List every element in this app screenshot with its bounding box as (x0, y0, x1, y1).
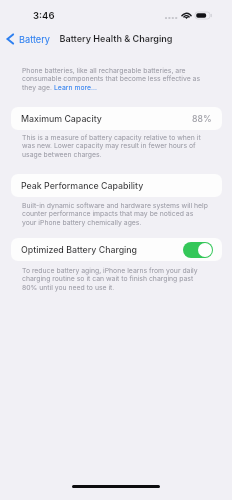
other: Wi-Fi (181, 12, 192, 19)
other: Back (5, 33, 15, 45)
button[interactable]: Maximum Capacity (11, 107, 222, 130)
button[interactable]: Peak Performance Capability (11, 174, 222, 197)
staticText: Battery Health & Charging (0, 33, 232, 44)
staticText: 88% (192, 113, 212, 124)
staticText: Learn more... (54, 83, 97, 91)
staticText: Optimized Battery Charging (21, 244, 138, 255)
staticText: This is a measure of battery capacity re… (22, 133, 222, 159)
staticText: Battery (19, 34, 50, 45)
staticText: To reduce battery aging, iPhone learns f… (22, 266, 222, 292)
button[interactable]: Optimized Battery Charging (11, 238, 222, 261)
other: Battery (195, 12, 212, 19)
button[interactable]: Learn more... (54, 83, 97, 91)
staticText: Phone batteries, like all rechargeable b… (22, 66, 222, 92)
staticText: Maximum Capacity (21, 113, 102, 124)
staticText: Peak Performance Capability (21, 180, 144, 191)
button[interactable]: Optimized Battery Charging toggle (183, 242, 213, 258)
staticText: Built-in dynamic software and hardware s… (22, 201, 222, 227)
button[interactable]: Back (5, 33, 50, 45)
staticText: 3:46 (33, 10, 55, 21)
other: Cellular signal (165, 17, 176, 20)
